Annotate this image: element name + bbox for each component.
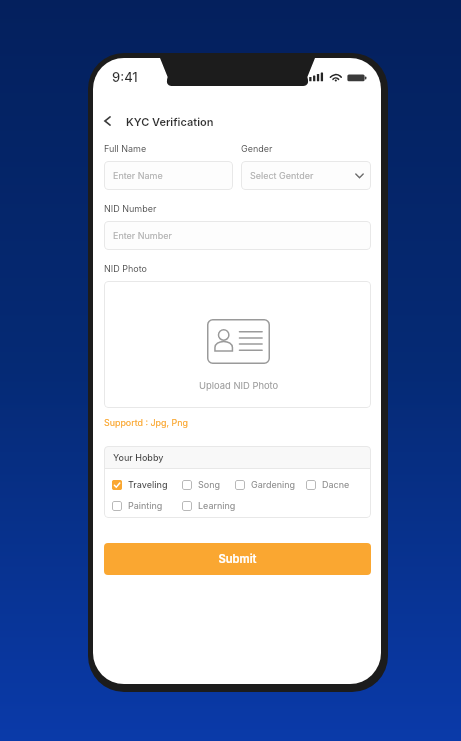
- staticText: Traveling: [128, 479, 168, 490]
- staticText: Gender: [241, 143, 273, 154]
- button[interactable]: Enter Name: [104, 161, 233, 190]
- staticText: Enter Name: [113, 170, 163, 181]
- staticText: Learning: [198, 500, 236, 511]
- staticText: 9:41: [112, 69, 138, 85]
- staticText: Painting: [128, 500, 163, 511]
- button[interactable]: Upload NID Photo: [104, 281, 371, 408]
- button[interactable]: Back: [99, 113, 115, 129]
- staticText: NID Number: [104, 203, 157, 214]
- button[interactable]: Dacne: [306, 479, 361, 490]
- button[interactable]: Song: [182, 479, 235, 490]
- staticText: Select Gentder: [250, 170, 314, 181]
- button[interactable]: Traveling: [112, 479, 182, 490]
- button[interactable]: Enter Number: [104, 221, 371, 250]
- staticText: Dacne: [322, 479, 350, 490]
- staticText: KYC Verification: [126, 115, 214, 128]
- staticText: Submit: [218, 552, 257, 566]
- staticText: Upload NID Photo: [199, 380, 279, 391]
- staticText: Full Name: [104, 143, 147, 154]
- staticText: Song: [198, 479, 221, 490]
- staticText: Gardening: [251, 479, 296, 490]
- button[interactable]: Submit: [104, 543, 371, 575]
- staticText: Enter Number: [113, 230, 172, 241]
- button[interactable]: Select Gentder: [241, 161, 371, 190]
- button[interactable]: Learning: [182, 500, 253, 511]
- button[interactable]: Painting: [112, 500, 182, 511]
- staticText: Your Hobby: [113, 452, 164, 463]
- staticText: NID Photo: [104, 263, 147, 274]
- staticText: Supportd : Jpg, Png: [104, 417, 188, 428]
- button[interactable]: Gardening: [235, 479, 306, 490]
